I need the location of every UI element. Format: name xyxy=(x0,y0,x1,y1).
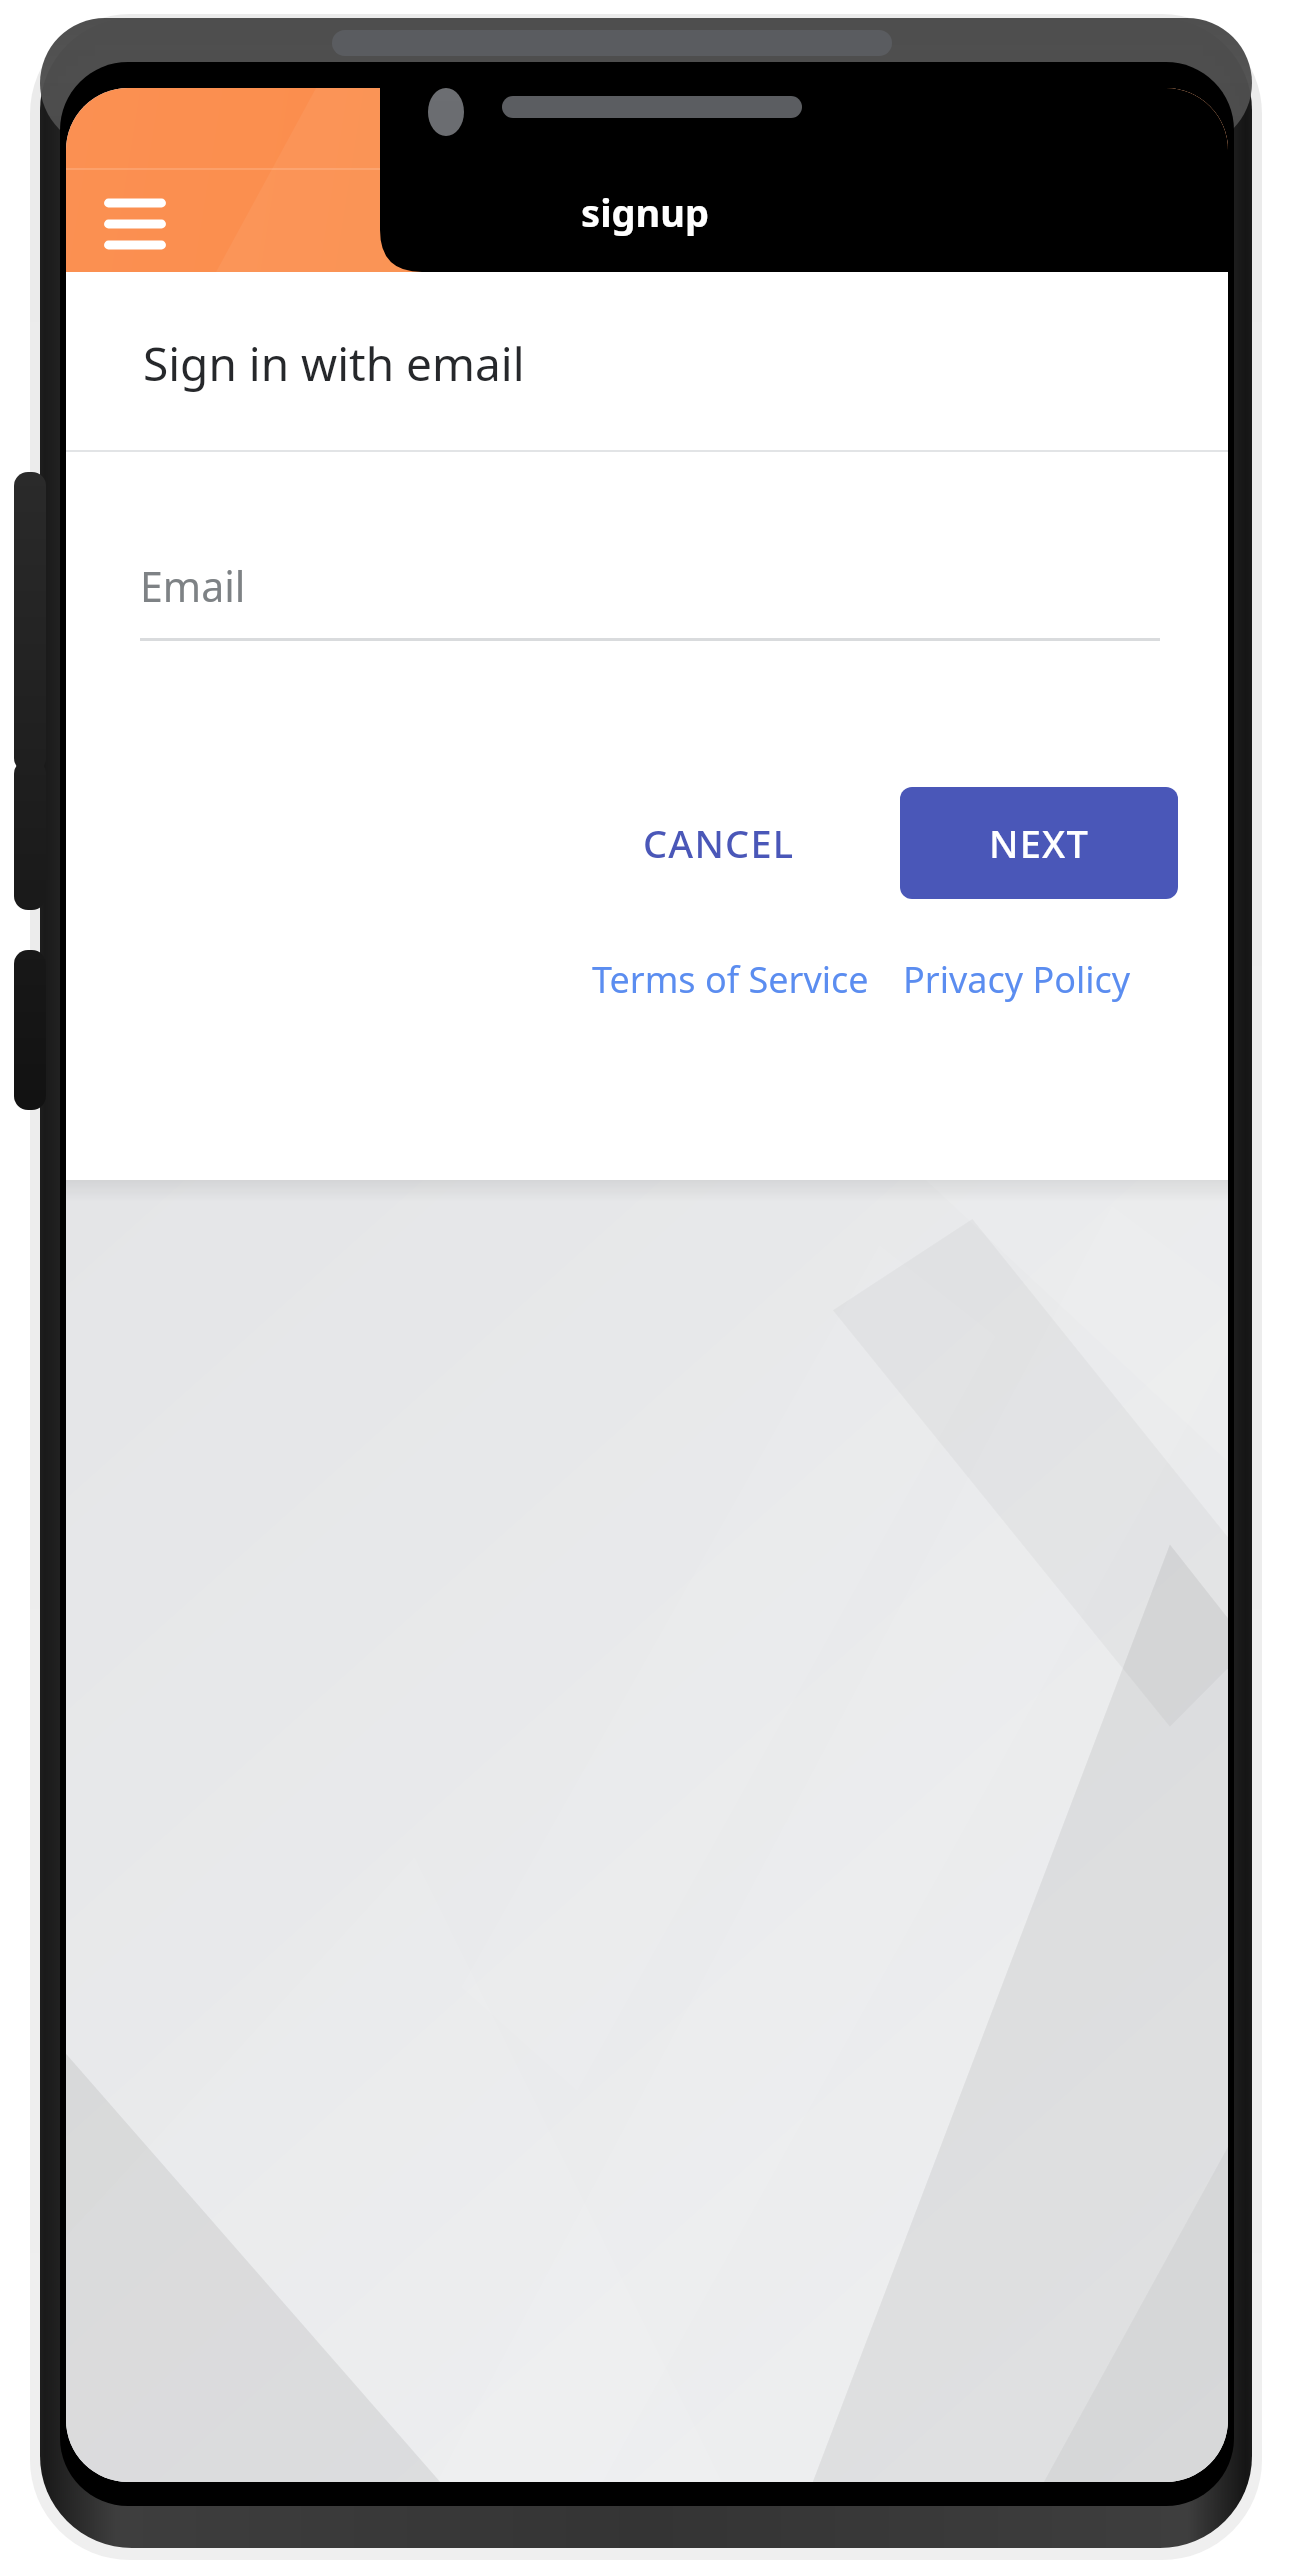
staticText: CANCEL xyxy=(643,817,795,869)
staticText: Privacy Policy xyxy=(903,955,1131,1004)
button[interactable]: Open navigation menu xyxy=(92,182,178,266)
button[interactable]: NEXT xyxy=(900,787,1178,899)
button[interactable]: Terms of Service xyxy=(592,950,882,1008)
staticText: Terms of Service xyxy=(592,955,869,1004)
button[interactable]: CANCEL xyxy=(606,787,832,899)
button[interactable]: Email xyxy=(140,558,1160,641)
staticText: Sign in with email xyxy=(143,332,525,395)
button[interactable]: Privacy Policy xyxy=(903,950,1165,1008)
staticText: NEXT xyxy=(989,817,1090,869)
staticText: Email xyxy=(140,558,246,614)
staticText: signup xyxy=(545,186,745,238)
